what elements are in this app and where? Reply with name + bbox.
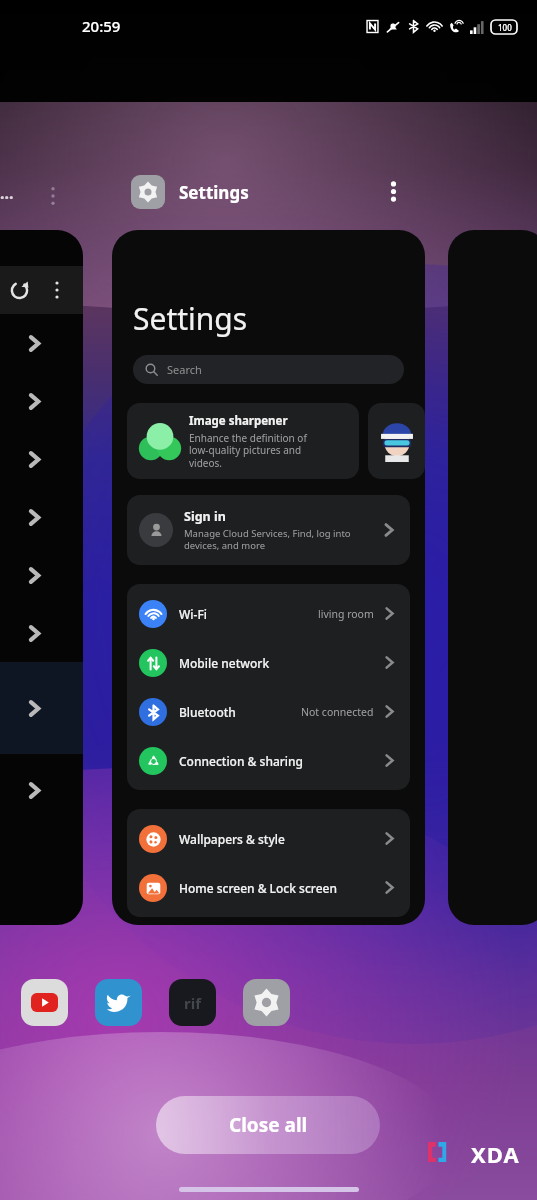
- button[interactable]: [0, 488, 83, 546]
- button[interactable]: [48, 185, 58, 207]
- staticText: Connection & sharing: [179, 753, 381, 769]
- staticText: Close all: [229, 1112, 308, 1138]
- staticText: 20:59: [82, 16, 121, 36]
- button[interactable]: [448, 230, 537, 925]
- staticText: Sign in: [184, 508, 226, 525]
- staticText: living room: [318, 607, 374, 621]
- button[interactable]: n: [0, 754, 83, 826]
- button[interactable]: Twitter: [95, 979, 142, 1026]
- staticText: Search: [167, 362, 202, 377]
- button[interactable]: Settings: [243, 979, 290, 1026]
- button[interactable]: Settings: [112, 230, 425, 925]
- button[interactable]: Close all: [156, 1096, 380, 1154]
- staticText: Bluetooth: [179, 704, 301, 720]
- button[interactable]: dit/: [0, 314, 83, 372]
- button[interactable]: Mobile network: [127, 638, 410, 687]
- staticText: Enhance the definition of low-quality pi…: [189, 431, 307, 470]
- button[interactable]: Wallpapers & style: [127, 814, 410, 863]
- button[interactable]: dit/: [0, 230, 83, 925]
- staticText: Home screen & Lock screen: [179, 880, 381, 896]
- staticText: Wi-Fi: [179, 606, 318, 622]
- staticText: Settings: [179, 181, 249, 204]
- button[interactable]: of: [0, 546, 83, 604]
- button[interactable]: [0, 430, 83, 488]
- button[interactable]: Sign in: [127, 495, 410, 565]
- staticText: rif: [184, 993, 201, 1013]
- button[interactable]: [131, 175, 165, 209]
- button[interactable]: [0, 604, 83, 662]
- button[interactable]: rif: [169, 979, 216, 1026]
- button[interactable]: Connection & sharing: [127, 736, 410, 785]
- button[interactable]: [368, 403, 425, 479]
- staticText: Image sharpener: [189, 413, 288, 429]
- staticText: o...: [0, 182, 14, 204]
- button[interactable]: YouTube: [21, 979, 68, 1026]
- staticText: Wallpapers & style: [179, 831, 381, 847]
- button[interactable]: d.it): [0, 372, 83, 430]
- button[interactable]: Bluetooth: [127, 687, 410, 736]
- staticText: Manage Cloud Services, Find, log into de…: [184, 527, 351, 552]
- staticText: Settings: [133, 298, 248, 339]
- button[interactable]: Home screen & Lock screen: [127, 863, 410, 912]
- staticText: Mobile network: [179, 655, 381, 671]
- staticText: Not connected: [301, 705, 374, 719]
- button[interactable]: More options: [380, 178, 406, 204]
- staticText: XDA: [471, 1139, 520, 1165]
- button[interactable]: Image sharpener: [127, 403, 359, 479]
- button[interactable]: Search: [133, 355, 404, 384]
- button[interactable]: Wi-Fi: [127, 589, 410, 638]
- staticText: 100: [498, 22, 512, 33]
